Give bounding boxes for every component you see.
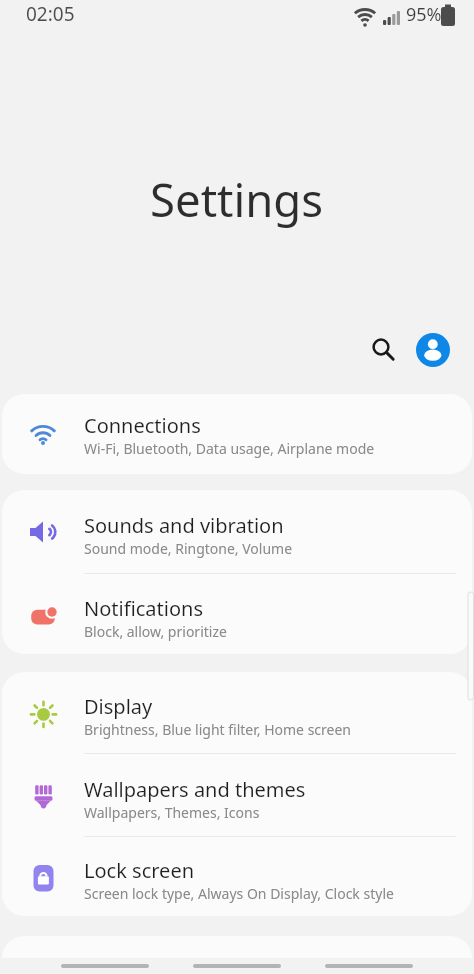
button[interactable] [193, 964, 281, 968]
staticText: Wallpapers and themes [84, 776, 306, 803]
staticText: Brightness, Blue light filter, Home scre… [84, 720, 352, 739]
button[interactable]: Lock screen [2, 837, 472, 916]
staticText: Block, allow, prioritize [84, 622, 227, 641]
button[interactable] [325, 964, 413, 968]
staticText: Sound mode, Ringtone, Volume [84, 539, 293, 558]
staticText: 95% [406, 2, 442, 27]
staticText: Connections [84, 412, 201, 439]
staticText: Screen lock type, Always On Display, Clo… [84, 884, 394, 903]
staticText: 02:05 [26, 1, 75, 27]
staticText: Lock screen [84, 857, 195, 884]
button[interactable]: Notifications [2, 574, 472, 654]
button[interactable]: Display [2, 672, 472, 753]
button[interactable]: Sounds and vibration [2, 490, 472, 573]
button[interactable] [61, 964, 149, 968]
button[interactable]: Connections [2, 394, 472, 474]
staticText: Wallpapers, Themes, Icons [84, 803, 260, 822]
button[interactable] [362, 328, 400, 366]
button[interactable]: Wallpapers and themes [2, 754, 472, 836]
button[interactable] [416, 333, 450, 367]
staticText: Display [84, 693, 153, 720]
staticText: Settings [150, 168, 324, 230]
staticText: Notifications [84, 595, 203, 622]
staticText: Sounds and vibration [84, 512, 284, 539]
staticText: Wi-Fi, Bluetooth, Data usage, Airplane m… [84, 439, 375, 458]
